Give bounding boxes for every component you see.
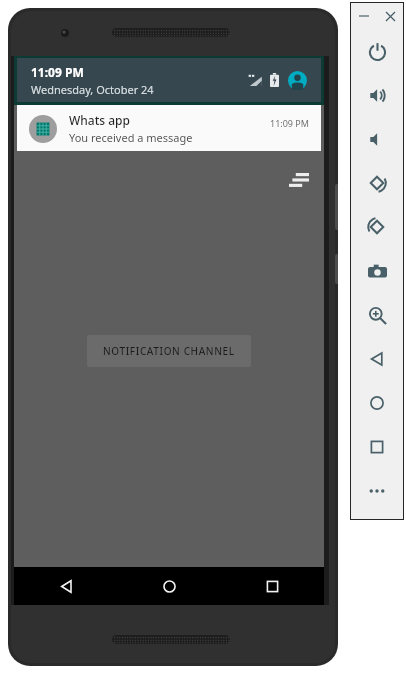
- staticText: 11:09 PM: [31, 64, 84, 80]
- button[interactable]: Back: [14, 567, 118, 605]
- staticText: Whats app: [69, 112, 130, 128]
- staticText: 11:09 PM: [270, 117, 309, 129]
- button[interactable]: Overview: [351, 425, 403, 469]
- button[interactable]: Back: [351, 337, 403, 381]
- button[interactable]: Clear all notifications: [286, 167, 312, 193]
- button[interactable]: Recent apps: [221, 567, 324, 605]
- button[interactable]: Power: [351, 29, 403, 73]
- staticText: You received a message: [69, 130, 193, 145]
- button[interactable]: Take screenshot: [351, 249, 403, 293]
- button[interactable]: Rotate left: [351, 161, 403, 205]
- staticText: NOTIFICATION CHANNEL: [103, 344, 235, 358]
- button[interactable]: Minimize: [351, 3, 377, 29]
- button[interactable]: Home: [351, 381, 403, 425]
- button[interactable]: Volume down: [351, 117, 403, 161]
- button[interactable]: Zoom: [351, 293, 403, 337]
- staticText: Wednesday, October 24: [31, 82, 154, 97]
- button[interactable]: Rotate right: [351, 205, 403, 249]
- button[interactable]: Close: [377, 3, 403, 29]
- button[interactable]: NOTIFICATION CHANNEL: [87, 335, 251, 367]
- button[interactable]: Home: [118, 567, 221, 605]
- button[interactable]: Whats app: [17, 105, 321, 151]
- button[interactable]: More: [351, 469, 403, 513]
- button[interactable]: User account: [287, 70, 307, 90]
- button[interactable]: Volume up: [351, 73, 403, 117]
